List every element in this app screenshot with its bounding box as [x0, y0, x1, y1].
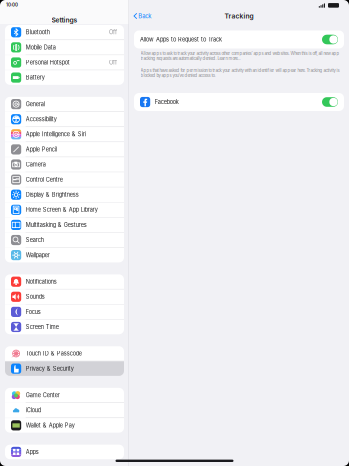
button[interactable]: Facebook — [134, 93, 344, 111]
button[interactable]: Display & Brightness — [5, 187, 124, 202]
staticText: Facebook — [155, 99, 179, 105]
staticText: Settings — [51, 16, 77, 24]
staticText: Allow Apps to Request to Track — [140, 36, 222, 43]
button[interactable]: Apple Intelligence & Siri — [5, 127, 124, 142]
staticText: Display & Brightness — [26, 191, 79, 198]
staticText: iCloud — [26, 407, 41, 414]
staticText: Apps that have asked for permission to t… — [140, 68, 339, 78]
button[interactable]: Home Screen & App Library — [5, 202, 124, 217]
staticText: Game Center — [26, 392, 60, 399]
button[interactable]: Control Centre — [5, 172, 124, 187]
staticText: Personal Hotspot — [26, 59, 70, 66]
button[interactable]: Bluetooth — [5, 25, 124, 40]
staticText: Off — [109, 59, 117, 66]
staticText: Off — [109, 29, 117, 36]
staticText: Notifications — [26, 278, 57, 285]
staticText: Battery — [26, 74, 45, 81]
button[interactable]: Touch ID & Passcode — [5, 346, 124, 361]
button[interactable]: Allow Apps to Request to Track — [134, 30, 344, 48]
staticText: Focus — [26, 308, 41, 315]
button[interactable]: Apple Pencil — [5, 142, 124, 157]
button[interactable]: Multitasking & Gestures — [5, 218, 124, 232]
staticText: Search — [26, 237, 44, 243]
staticText: Mobile Data — [26, 44, 56, 51]
staticText: Control Centre — [26, 176, 63, 183]
button[interactable]: Personal Hotspot — [5, 55, 124, 70]
button[interactable]: Screen Time — [5, 320, 124, 334]
button[interactable]: Accessibility — [5, 112, 124, 126]
staticText: Camera — [26, 161, 46, 168]
button[interactable]: Back — [129, 9, 156, 23]
button[interactable]: Notifications — [5, 274, 124, 289]
staticText: Multitasking & Gestures — [26, 221, 87, 228]
staticText: Home Screen & App Library — [26, 206, 98, 213]
button[interactable]: Game Center — [5, 388, 124, 402]
button[interactable]: Wallpaper — [5, 248, 124, 262]
button[interactable]: iCloud — [5, 403, 124, 418]
staticText: Tracking — [224, 12, 253, 20]
button[interactable]: Sounds — [5, 289, 124, 304]
button[interactable]: Camera — [5, 157, 124, 172]
staticText: General — [26, 101, 45, 107]
button[interactable]: Apps — [5, 445, 124, 459]
staticText: Wallet & Apple Pay — [26, 422, 75, 429]
staticText: Back — [138, 12, 151, 20]
button[interactable]: Battery — [5, 70, 124, 85]
staticText: Touch ID & Passcode — [26, 350, 82, 357]
staticText: Apple Pencil — [26, 146, 57, 153]
staticText: Bluetooth — [26, 29, 50, 36]
staticText: Accessibility — [26, 116, 57, 123]
button[interactable]: Focus — [5, 305, 124, 319]
staticText: Apps — [26, 448, 39, 455]
staticText: 10:00 — [6, 2, 18, 8]
staticText: Privacy & Security — [26, 365, 74, 372]
button[interactable]: Wallet & Apple Pay — [5, 418, 124, 433]
staticText: Sounds — [26, 293, 45, 300]
staticText: Wallpaper — [26, 252, 50, 258]
staticText: Apple Intelligence & Siri — [26, 131, 86, 138]
button[interactable]: Mobile Data — [5, 40, 124, 55]
button[interactable]: General — [5, 97, 124, 111]
staticText: Allow apps to ask to track your activity… — [140, 51, 339, 61]
button[interactable]: Search — [5, 233, 124, 247]
button[interactable]: Privacy & Security — [5, 361, 124, 376]
staticText: Screen Time — [26, 324, 59, 330]
